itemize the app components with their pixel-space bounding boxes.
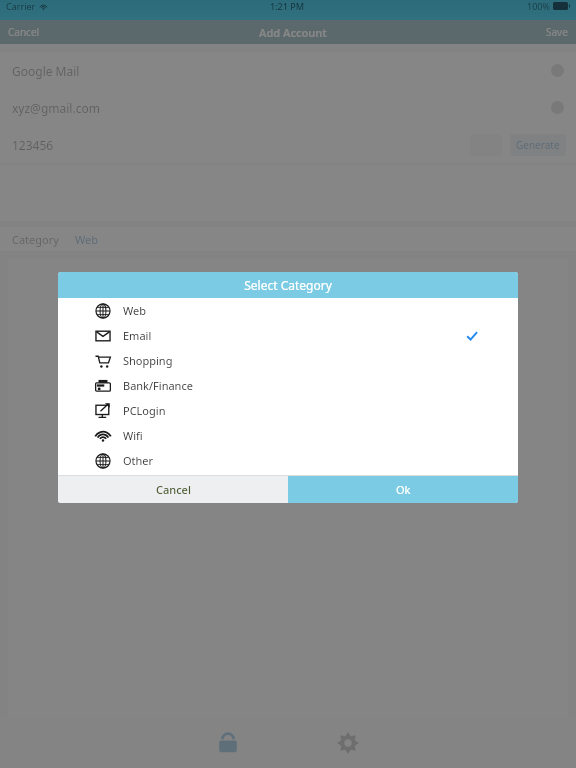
button[interactable]: PCLogin: [58, 398, 518, 423]
button[interactable]: Email: [58, 323, 518, 348]
staticText: Web: [123, 303, 146, 318]
staticText: Wifi: [123, 428, 143, 443]
button[interactable]: Cancel: [58, 476, 288, 503]
button[interactable]: Web: [58, 298, 518, 323]
button[interactable]: Ok: [288, 476, 518, 503]
staticText: Carrier: [6, 0, 36, 12]
button[interactable]: Other: [58, 448, 518, 473]
staticText: Add Account: [259, 25, 327, 40]
staticText: Ok: [396, 482, 411, 497]
staticText: Save: [546, 25, 568, 39]
staticText: Email: [123, 328, 152, 343]
staticText: Shopping: [123, 353, 173, 368]
staticText: 123456: [12, 137, 54, 153]
button[interactable]: Bank/Finance: [58, 373, 518, 398]
staticText: 100%: [527, 0, 550, 12]
staticText: Bank/Finance: [123, 378, 193, 393]
staticText: Select Category: [244, 277, 332, 293]
staticText: Web: [75, 232, 98, 247]
staticText: Generate: [516, 138, 560, 152]
staticText: Category: [12, 232, 59, 247]
staticText: PCLogin: [123, 403, 166, 418]
staticText: xyz@gmail.com: [12, 100, 100, 116]
staticText: 1:21 PM: [270, 0, 304, 12]
staticText: Google Mail: [12, 63, 80, 79]
staticText: Cancel: [8, 25, 40, 39]
button[interactable]: Wifi: [58, 423, 518, 448]
button[interactable]: Shopping: [58, 348, 518, 373]
staticText: Other: [123, 453, 154, 468]
staticText: Cancel: [156, 482, 191, 497]
